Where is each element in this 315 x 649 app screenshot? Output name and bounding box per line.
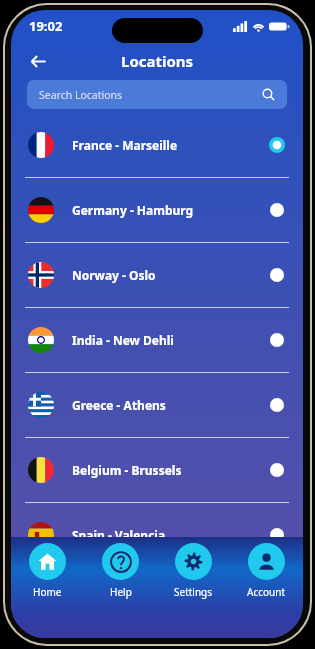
button[interactable]: Belgium - Brussels — [11, 438, 303, 502]
staticText: Germany - Hamburg — [72, 202, 266, 218]
staticText: Home — [33, 585, 62, 599]
staticText: Norway - Oslo — [72, 267, 266, 283]
button[interactable]: Settings — [157, 543, 230, 599]
button[interactable]: Search Locations — [27, 80, 287, 109]
staticText: Belgium - Brussels — [72, 462, 266, 478]
button[interactable]: Greece - Athens — [11, 373, 303, 437]
button[interactable]: Spain - Valencia — [11, 503, 303, 567]
staticText: Settings — [174, 585, 213, 599]
button[interactable]: Norway - Oslo — [11, 243, 303, 307]
button[interactable]: Germany - Hamburg — [11, 178, 303, 242]
staticText: Locations — [121, 51, 194, 71]
button[interactable]: Help — [84, 543, 157, 599]
staticText: 19:02 — [29, 17, 63, 35]
button[interactable]: India - New Dehli — [11, 308, 303, 372]
button[interactable]: France - Marseille — [11, 113, 303, 177]
button[interactable]: Back — [21, 44, 55, 78]
staticText: Help — [110, 585, 132, 599]
staticText: India - New Dehli — [72, 332, 266, 348]
staticText: France - Marseille — [72, 137, 266, 153]
button[interactable]: Home — [11, 543, 84, 599]
staticText: Search Locations — [39, 88, 123, 102]
staticText: Greece - Athens — [72, 397, 266, 413]
staticText: Account — [247, 585, 286, 599]
staticText: Spain - Valencia — [72, 527, 266, 543]
button[interactable]: Account — [230, 543, 303, 599]
